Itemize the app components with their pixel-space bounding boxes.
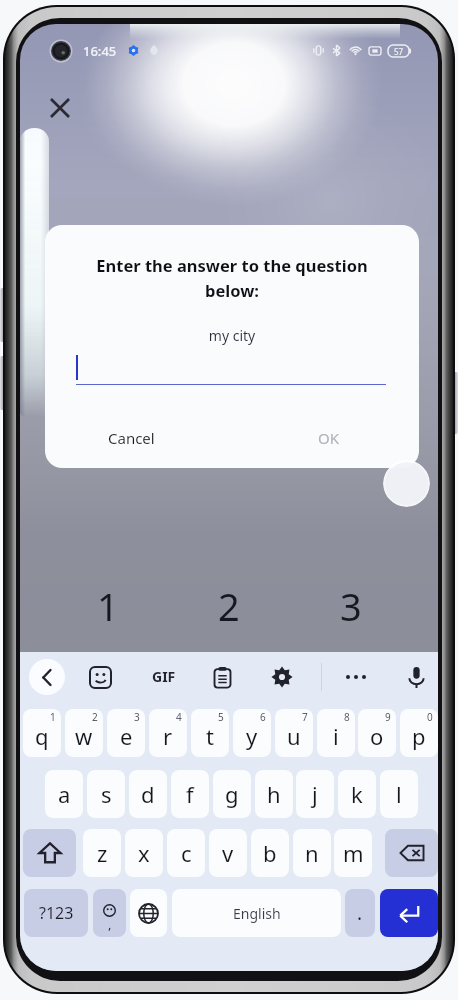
staticText: v	[222, 838, 234, 868]
staticText: u	[287, 721, 301, 751]
button[interactable]: i	[317, 709, 355, 757]
button[interactable]: l	[380, 770, 418, 818]
button[interactable]: Shift	[23, 829, 76, 877]
staticText: Cancel	[108, 428, 155, 448]
button[interactable]: Settings	[267, 662, 297, 692]
button[interactable]: t	[191, 709, 229, 757]
button[interactable]: h	[255, 770, 293, 818]
staticText: 3	[134, 710, 140, 724]
staticText: e	[120, 721, 133, 751]
button[interactable]: OK	[312, 422, 346, 454]
staticText: a	[58, 779, 71, 809]
button[interactable]: Accessibility menu	[383, 460, 430, 507]
staticText: j	[312, 779, 318, 809]
button[interactable]: Voice input	[401, 662, 431, 692]
button[interactable]: a	[45, 770, 83, 818]
staticText: 8	[344, 710, 350, 724]
button[interactable]: Cancel	[102, 422, 161, 454]
staticText: 57	[394, 46, 404, 57]
button[interactable]: Stickers	[85, 662, 115, 692]
button[interactable]: Close	[42, 90, 78, 126]
button[interactable]: j	[296, 770, 334, 818]
staticText: y	[246, 721, 258, 751]
staticText: 0	[427, 710, 433, 724]
staticText: 2	[218, 580, 240, 628]
button[interactable]: Clipboard	[207, 662, 237, 692]
staticText: 2	[92, 710, 98, 724]
staticText: 6	[260, 710, 266, 724]
staticText: English	[233, 904, 281, 923]
staticText: x	[138, 838, 150, 868]
staticText: q	[35, 721, 49, 751]
button[interactable]: w	[65, 709, 103, 757]
staticText: Enter the answer to the question below:	[69, 254, 395, 302]
staticText: l	[396, 779, 402, 809]
button[interactable]: r	[149, 709, 187, 757]
button[interactable]: v	[209, 829, 247, 877]
staticText: b	[263, 838, 277, 868]
button[interactable]: e	[107, 709, 145, 757]
button[interactable]: m	[334, 829, 372, 877]
staticText: w	[75, 721, 93, 751]
staticText: c	[181, 838, 192, 868]
staticText: d	[141, 779, 155, 809]
staticText: z	[97, 838, 108, 868]
staticText: i	[333, 721, 339, 751]
button[interactable]: k	[338, 770, 376, 818]
button[interactable]: .	[345, 889, 375, 937]
staticText: s	[101, 779, 112, 809]
button[interactable]: s	[87, 770, 125, 818]
button[interactable]: b	[251, 829, 289, 877]
button[interactable]: u	[275, 709, 313, 757]
button[interactable]: x	[125, 829, 163, 877]
staticText: ,	[108, 915, 112, 933]
staticText: o	[370, 721, 384, 751]
staticText: m	[343, 838, 364, 868]
staticText: 7	[302, 710, 308, 724]
staticText: 3	[340, 580, 362, 628]
staticText: p	[412, 721, 426, 751]
button[interactable]: f	[171, 770, 209, 818]
button[interactable]: Emoji	[93, 889, 126, 937]
staticText: t	[206, 721, 214, 751]
staticText: 4	[176, 710, 182, 724]
button[interactable]: Back	[29, 659, 65, 695]
staticText: h	[267, 779, 281, 809]
staticText: .	[357, 900, 363, 926]
button[interactable]: y	[233, 709, 271, 757]
button[interactable]: d	[129, 770, 167, 818]
button[interactable]: More options	[341, 662, 371, 692]
button[interactable]: z	[83, 829, 121, 877]
button[interactable]: English	[172, 889, 341, 937]
staticText: 5	[218, 710, 224, 724]
button[interactable]: o	[358, 709, 396, 757]
staticText: g	[225, 779, 239, 809]
staticText: OK	[318, 428, 340, 448]
button[interactable]: Backspace	[385, 829, 438, 877]
button[interactable]: c	[167, 829, 205, 877]
button[interactable]: Change language	[130, 889, 167, 937]
button[interactable]: n	[293, 829, 331, 877]
button[interactable]: Enter	[380, 889, 438, 937]
staticText: my city	[45, 326, 419, 345]
staticText: GIF	[152, 667, 176, 686]
staticText: k	[351, 779, 363, 809]
staticText: n	[305, 838, 319, 868]
button[interactable]: g	[213, 770, 251, 818]
staticText: r	[163, 721, 173, 751]
staticText: ?123	[39, 902, 74, 924]
staticText: 9	[385, 710, 391, 724]
staticText: 1	[50, 710, 56, 724]
button[interactable]: p	[400, 709, 438, 757]
staticText: 16:45	[83, 42, 117, 60]
staticText: f	[186, 779, 194, 809]
button[interactable]: ?123	[24, 889, 88, 937]
button[interactable]: GIF	[150, 662, 178, 690]
staticText: 1	[97, 580, 119, 628]
button[interactable]: q	[23, 709, 61, 757]
